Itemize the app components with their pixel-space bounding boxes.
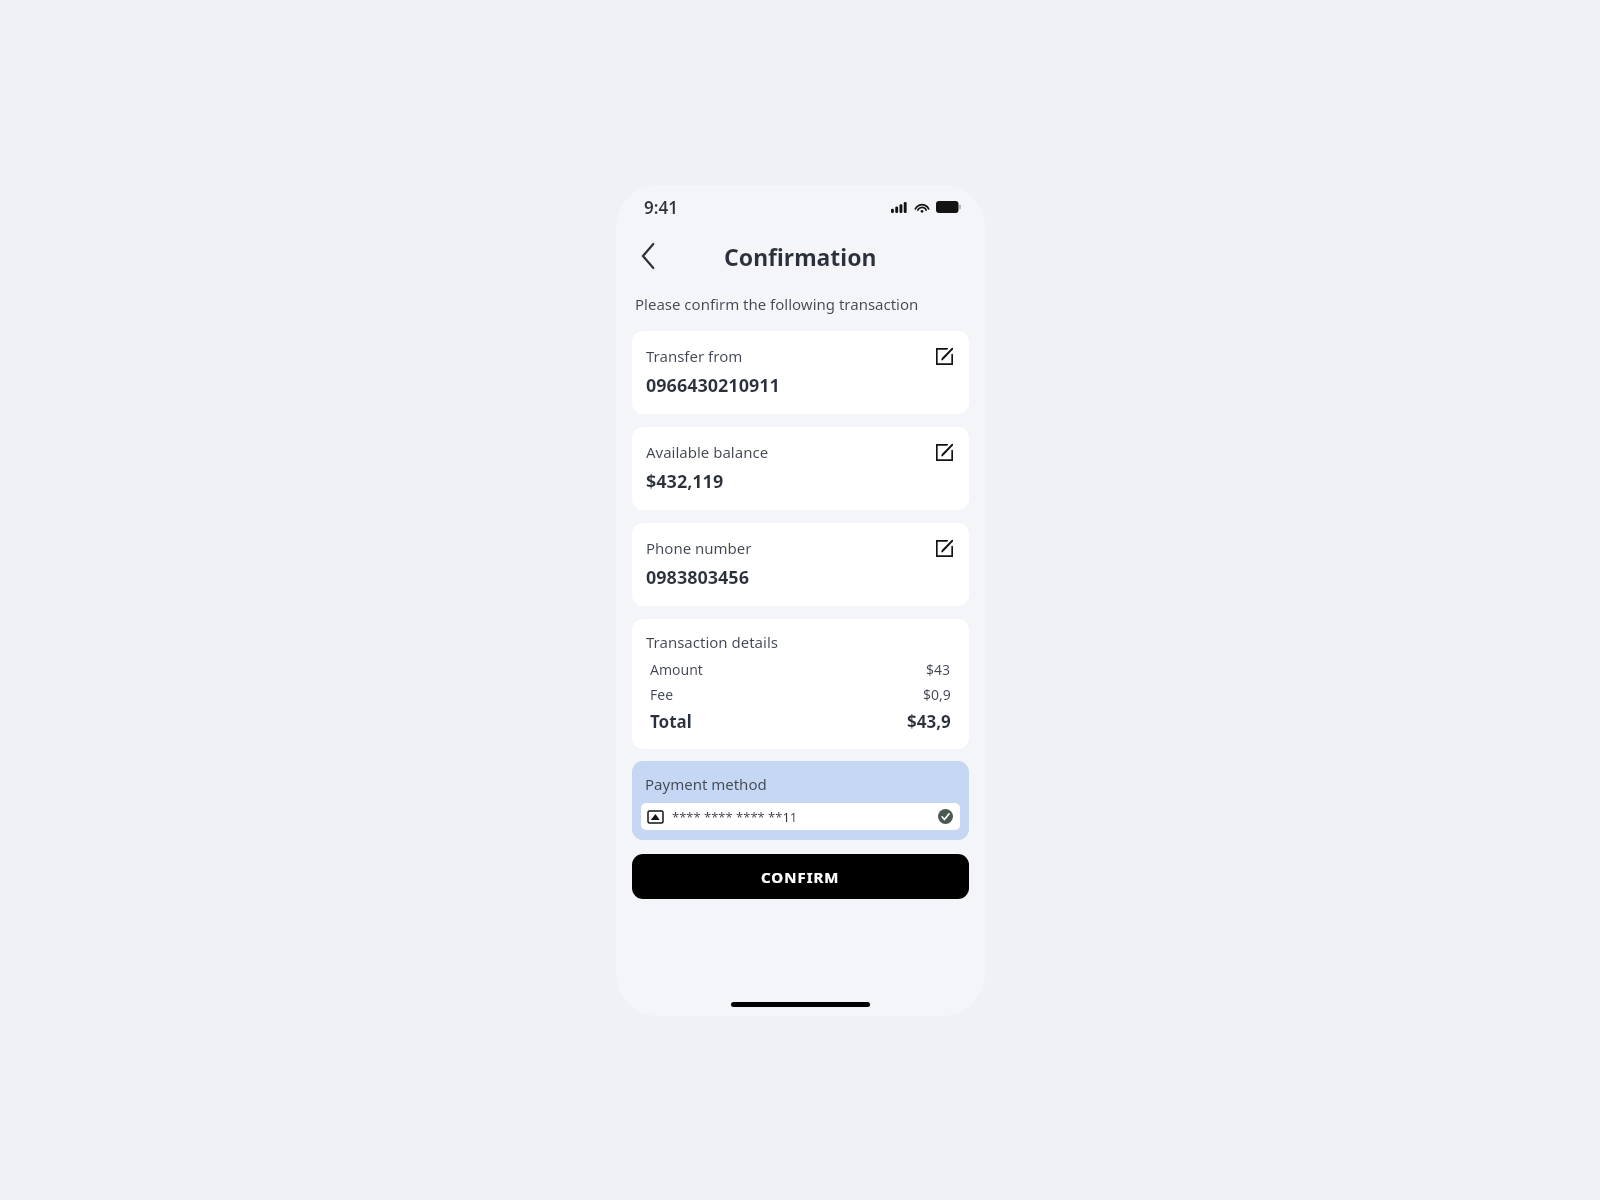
button[interactable]: Transfer from bbox=[632, 331, 969, 414]
staticText: Available balance bbox=[646, 442, 931, 462]
staticText: 9:41 bbox=[644, 196, 678, 219]
button[interactable]: Edit Transfer from bbox=[931, 343, 957, 369]
button[interactable]: Available balance bbox=[632, 427, 969, 510]
button[interactable]: **** **** **** **11 bbox=[641, 803, 960, 830]
staticText: 0966430210911 bbox=[646, 373, 780, 398]
button[interactable]: Phone number bbox=[632, 523, 969, 606]
button[interactable]: Back bbox=[626, 234, 670, 278]
staticText: Transfer from bbox=[646, 346, 931, 366]
button[interactable]: Payment method bbox=[632, 761, 969, 840]
staticText: Phone number bbox=[646, 538, 931, 558]
staticText: $43 bbox=[926, 660, 951, 679]
button[interactable]: Edit Phone number bbox=[931, 535, 957, 561]
staticText: Total bbox=[650, 710, 907, 733]
button[interactable]: CONFIRM bbox=[632, 854, 969, 899]
staticText: Amount bbox=[650, 660, 926, 679]
button[interactable]: Transaction details bbox=[632, 619, 969, 749]
staticText: **** **** **** **11 bbox=[672, 808, 938, 826]
staticText: $0,9 bbox=[923, 685, 951, 704]
staticText: $432,119 bbox=[646, 469, 724, 494]
staticText: 0983803456 bbox=[646, 565, 749, 590]
button[interactable]: Edit Available balance bbox=[931, 439, 957, 465]
staticText: $43,9 bbox=[907, 710, 951, 733]
staticText: Confirmation bbox=[724, 241, 877, 272]
staticText: CONFIRM bbox=[761, 867, 840, 887]
staticText: Payment method bbox=[645, 774, 767, 794]
staticText: Please confirm the following transaction bbox=[635, 294, 919, 314]
staticText: Transaction details bbox=[646, 632, 778, 652]
staticText: Fee bbox=[650, 685, 923, 704]
